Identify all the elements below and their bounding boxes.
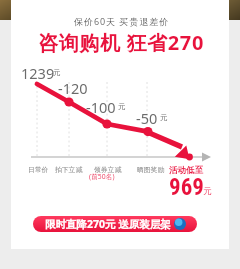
button[interactable]: 限时直降270元 送原装层架 [33, 216, 197, 232]
staticText: -100 [86, 97, 116, 117]
staticText: 日常价 [28, 165, 49, 174]
staticText: (前50名) [89, 172, 115, 181]
staticText: 元 [160, 113, 168, 122]
staticText: -120 [58, 78, 88, 98]
other: Service badge [174, 218, 186, 230]
staticText: 元 [53, 68, 61, 77]
staticText: 活动低至 [169, 165, 203, 176]
staticText: 咨询购机 狂省270 [38, 29, 205, 56]
staticText: 限时直降270元 送原装层架 [45, 217, 171, 231]
staticText: 领券立减 [94, 165, 122, 174]
staticText: 晒图奖励 [137, 165, 165, 174]
staticText: 保价60天 买贵退差价 [74, 15, 170, 27]
staticText: 元 [203, 186, 212, 197]
staticText: -50 [136, 108, 158, 128]
staticText: 969 [169, 174, 204, 201]
staticText: 元 [118, 102, 126, 111]
staticText: 拍下立减 [55, 165, 83, 174]
staticText: 1239 [21, 63, 55, 83]
